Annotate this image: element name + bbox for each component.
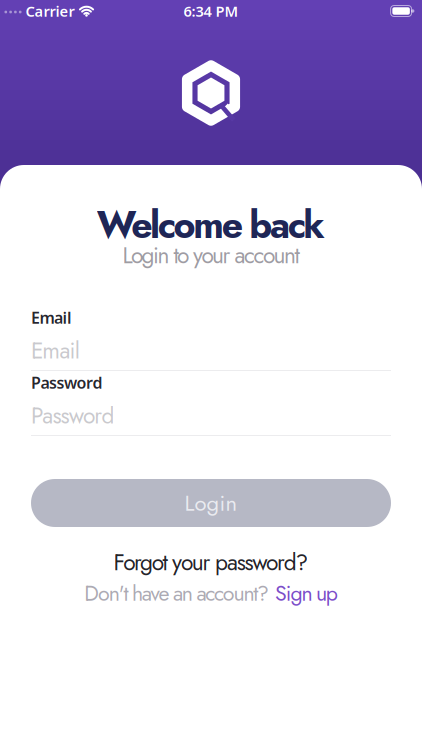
button[interactable]: Sign up (275, 578, 338, 609)
staticText: Password (31, 399, 114, 432)
button[interactable]: Forgot your password? (113, 546, 308, 579)
staticText: Login to your account (122, 239, 299, 272)
staticText: Forgot your password? (113, 546, 308, 579)
staticText: Welcome back (97, 198, 325, 252)
staticText: Don't have an account? (84, 578, 269, 609)
staticText: Password (31, 372, 102, 393)
staticText: Email (31, 307, 72, 328)
button[interactable]: Password (31, 372, 391, 436)
staticText: Email (31, 334, 80, 367)
staticText: Carrier (25, 1, 74, 21)
button[interactable]: Login (31, 479, 391, 527)
staticText: Login (184, 487, 237, 519)
button[interactable]: Email (31, 307, 391, 371)
staticText: 6:34 PM (183, 1, 238, 21)
staticText: Sign up (275, 578, 338, 609)
